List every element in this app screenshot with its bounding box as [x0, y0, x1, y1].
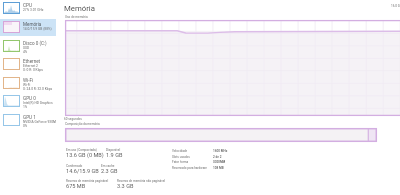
button[interactable]: Ethernet	[0, 55, 56, 73]
staticText: CPU	[23, 3, 32, 8]
staticText: 1%	[23, 105, 28, 109]
button[interactable]: GPU 1	[0, 111, 56, 129]
staticText: 4%	[23, 50, 28, 54]
staticText: Memória	[23, 22, 42, 27]
staticText: Reservado para hardware	[172, 166, 207, 170]
staticText: S: 24.0 R: 32.0 Kbps	[23, 87, 53, 91]
staticText: Reserva de memória não paginável	[117, 179, 166, 183]
staticText: 0%	[23, 124, 28, 128]
staticText: Fator forma	[172, 160, 189, 164]
staticText: Wi-Fi	[23, 83, 31, 87]
staticText: Disponível	[106, 148, 121, 152]
staticText: Em uso (Compactada)	[66, 148, 97, 152]
staticText: 2 de 2	[213, 155, 222, 159]
staticText: 108 MB	[213, 166, 224, 170]
staticText: 675 MB	[66, 183, 86, 190]
staticText: Reserva de memória paginável	[66, 179, 109, 183]
staticText: Wi-Fi	[23, 78, 34, 83]
staticText: Ethernet 2	[23, 64, 38, 68]
staticText: Composição da memória	[65, 122, 100, 126]
staticText: NVIDIA GeForce 930M	[23, 120, 56, 124]
other: Composição da memória	[65, 128, 377, 142]
button[interactable]: Wi-Fi	[0, 74, 56, 92]
staticText: GPU 0	[23, 96, 36, 101]
staticText: 60 segundos	[64, 117, 82, 121]
staticText: Uso de memória	[65, 15, 88, 19]
other: Lista de recursos	[0, 0, 56, 195]
staticText: SSD	[23, 46, 30, 50]
staticText: S: 0 R: 0 Kbps	[23, 68, 44, 72]
staticText: 13.6 GB (0 MB)	[66, 152, 104, 159]
staticText: 1600 MHz	[213, 149, 228, 153]
staticText: Confirmado	[66, 164, 83, 168]
staticText: 16.0 GB	[391, 4, 400, 8]
staticText: 27% 3.01 GHz	[23, 8, 44, 12]
staticText: 3.3 GB	[117, 183, 134, 190]
staticText: Velocidade	[172, 149, 188, 153]
staticText: GPU 1	[23, 115, 36, 120]
staticText: Intel(R) HD Graphics	[23, 101, 54, 105]
staticText: Ethernet	[23, 59, 41, 64]
staticText: 2.3 GB	[101, 168, 118, 175]
staticText: Memória	[64, 4, 96, 13]
button[interactable]: Disco 0 (C:)	[0, 37, 56, 55]
staticText: 14.0/15.9 GB (88%)	[23, 27, 52, 31]
staticText: 1.9 GB	[106, 152, 123, 159]
button[interactable]: Memória	[0, 18, 56, 36]
button[interactable]: CPU	[0, 0, 56, 17]
staticText: Em cache	[101, 164, 115, 168]
staticText: SODIMM	[213, 160, 226, 164]
staticText: Slots usados	[172, 155, 190, 159]
staticText: Disco 0 (C:)	[23, 41, 47, 46]
staticText: 14.6/15.9 GB	[66, 168, 99, 175]
button[interactable]: GPU 0	[0, 92, 56, 110]
